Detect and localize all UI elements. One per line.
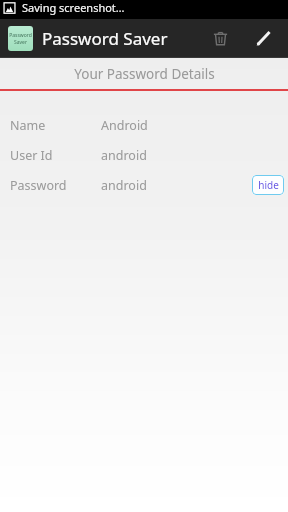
staticText: Your Password Details [74,65,215,83]
staticText: Android [101,117,148,134]
button[interactable]: Name [0,110,288,140]
button[interactable]: User Id [0,140,288,170]
button[interactable]: Delete [201,19,239,57]
button[interactable]: App icon [8,26,33,51]
staticText: Saver [14,39,27,46]
staticText: Password [10,177,67,194]
staticText: Password [9,32,32,39]
staticText: hide [258,178,279,192]
staticText: Saving screenshot… [22,0,125,15]
button[interactable]: hide [252,175,284,195]
staticText: android [101,177,147,194]
staticText: android [101,147,147,164]
button[interactable]: Edit [244,19,282,57]
button[interactable]: Password [0,170,288,200]
staticText: Password Saver [42,27,168,50]
staticText: Name [10,117,46,134]
staticText: User Id [10,147,53,164]
